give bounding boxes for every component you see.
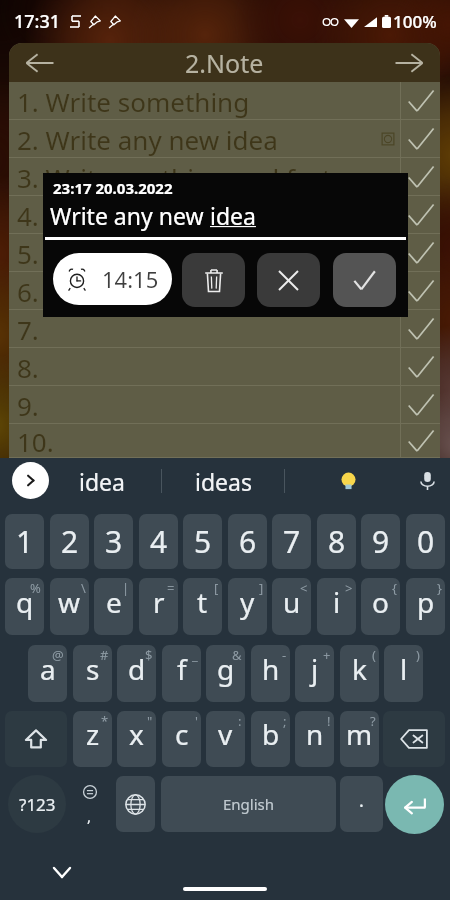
button[interactable]: q [5,578,44,635]
button[interactable]: 4 [139,514,178,569]
button[interactable]: x [117,711,156,767]
button[interactable]: Backspace [383,711,445,767]
button[interactable]: ?123 [8,775,66,833]
button[interactable]: l [384,645,423,702]
button[interactable]: b [251,711,290,767]
button[interactable]: 6. [9,272,440,310]
staticText: 4 [150,521,168,562]
button[interactable]: y [228,578,267,635]
button[interactable]: t [183,578,222,635]
button[interactable]: Change keyboard language [116,776,155,832]
button[interactable]: v [206,711,245,767]
button[interactable]: o [361,578,400,635]
button[interactable]: 5 [183,514,222,569]
button[interactable]: a [28,645,67,702]
button[interactable]: Hide keyboard [48,858,76,886]
staticText: v [218,715,233,753]
button[interactable]: e [94,578,133,635]
button[interactable]: Confirm [333,253,396,307]
button[interactable]: 1 [5,514,44,569]
staticText: 6 [239,521,257,562]
button[interactable]: m [340,711,379,767]
staticText: f [177,650,187,688]
button[interactable]: Cancel [257,253,320,307]
button[interactable]: 3. Write anything and fast [9,158,440,196]
button[interactable]: Voice input [407,461,447,501]
button[interactable]: More suggestions [12,462,49,499]
staticText: b [262,715,280,753]
staticText: 8. [17,350,39,385]
staticText: [ [214,579,219,597]
staticText: : [238,712,242,730]
staticText: % [30,579,41,597]
button[interactable]: Delete [182,253,245,307]
staticText: 100% [393,10,437,33]
staticText: 3. Write anything and fast [17,160,332,195]
staticText: 2 [61,521,79,562]
button[interactable]: 1. Write something [9,82,440,120]
staticText: = [167,579,175,597]
button[interactable]: 9 [361,514,400,569]
button[interactable]: k [340,645,379,702]
staticText: u [283,583,301,621]
staticText: ? [370,712,376,730]
staticText: - [282,646,287,664]
button[interactable]: 8. [9,348,440,386]
staticText: d [128,650,146,688]
staticText: idea [79,466,125,497]
staticText: # [100,646,109,664]
button[interactable]: Emoji [73,776,108,832]
button[interactable]: 10. [9,424,440,458]
button[interactable]: 9. [9,386,440,424]
staticText: @ [52,646,64,664]
staticText: Write any new [50,200,210,231]
button[interactable]: English [161,776,336,832]
button[interactable]: 6 [228,514,267,569]
button[interactable]: u [272,578,311,635]
button[interactable]: 4. [9,196,440,234]
button[interactable]: 0 [406,514,445,569]
button[interactable]: j [295,645,334,702]
button[interactable]: 3 [94,514,133,569]
button[interactable]: z [73,711,112,767]
button[interactable]: p [406,578,445,635]
button[interactable]: . [340,776,383,832]
button[interactable]: ideas [183,458,263,504]
button[interactable]: s [73,645,112,702]
staticText: < [300,579,308,597]
staticText: ideas [195,466,252,497]
staticText: 4. [17,198,39,233]
button[interactable]: f [162,645,201,702]
button[interactable]: w [50,578,89,635]
button[interactable]: 5. [9,234,440,272]
button[interactable]: 7. [9,310,440,348]
button[interactable]: i [317,578,356,635]
button[interactable]: r [139,578,178,635]
button[interactable]: d [117,645,156,702]
button[interactable]: n [295,711,334,767]
button[interactable]: 2 [50,514,89,569]
button[interactable]: Previous note [9,43,71,82]
staticText: " [147,712,153,730]
button[interactable]: 2. Write any new idea [9,120,440,158]
staticText: & [232,646,242,664]
staticText: + [323,646,331,664]
button[interactable]: Next note [378,43,440,82]
button[interactable]: h [251,645,290,702]
staticText: 0 [417,521,435,562]
button[interactable]: Enter [385,775,444,834]
button[interactable]: 14:15 [53,253,172,305]
staticText: 14:15 [102,264,159,294]
button[interactable]: g [206,645,245,702]
button[interactable]: Emoji suggestions [328,461,368,501]
button[interactable]: 8 [317,514,356,569]
button[interactable]: idea [62,458,142,504]
staticText: * [101,712,109,730]
staticText: ?123 [19,793,56,816]
button[interactable]: c [162,711,201,767]
button[interactable]: 7 [272,514,311,569]
staticText: ! [327,712,331,730]
staticText: g [217,650,235,688]
staticText: 1 [16,521,34,562]
button[interactable]: Shift [5,711,67,767]
